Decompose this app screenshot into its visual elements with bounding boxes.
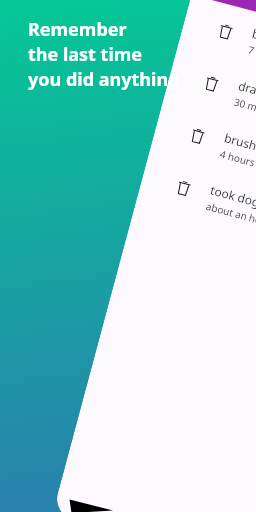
button[interactable]: Delete drank water <box>163 47 256 160</box>
other: Delete took dog out <box>176 180 191 196</box>
staticText: took dog out <box>209 181 256 216</box>
button[interactable]: Delete took dog out <box>135 151 256 264</box>
staticText: 4 hours ago <box>218 147 256 175</box>
button[interactable]: Delete brushed hair <box>149 99 256 212</box>
button[interactable]: Delete brush teeth <box>177 0 256 108</box>
staticText: you did anything <box>28 67 180 92</box>
staticText: brushed hair <box>223 129 256 164</box>
staticText: about an hour ago <box>204 199 256 235</box>
other: Delete drank water <box>204 76 219 92</box>
staticText: 30 minutes ago <box>232 94 256 127</box>
staticText: brush teeth <box>251 25 256 57</box>
staticText: 7 minutes ago <box>246 42 256 73</box>
staticText: Remember <box>28 17 127 42</box>
other: Delete brush teeth <box>218 23 233 40</box>
staticText: the last time <box>28 42 143 67</box>
staticText: drank water <box>237 77 256 110</box>
other: Delete brushed hair <box>190 128 205 144</box>
